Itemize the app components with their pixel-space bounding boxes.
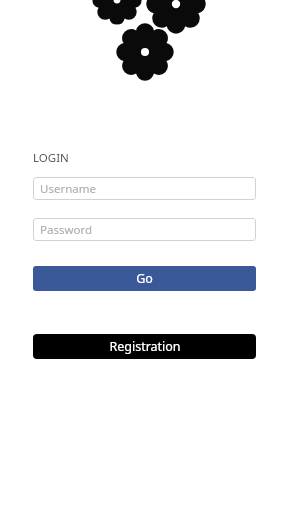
button[interactable]: Password [33,218,256,241]
button[interactable]: Go [33,266,256,291]
button[interactable]: Username [33,177,256,200]
staticText: Username [40,181,96,197]
staticText: Password [40,222,93,238]
button[interactable]: Registration [33,334,256,359]
staticText: Go [136,270,153,287]
staticText: Registration [109,338,181,355]
staticText: LOGIN [33,150,69,166]
other: Login screen [0,0,288,512]
